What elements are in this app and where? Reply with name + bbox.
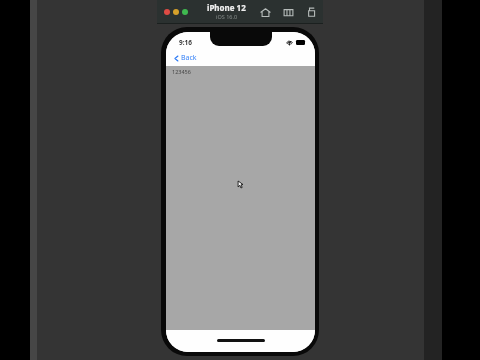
- button[interactable]: [173, 9, 179, 15]
- button[interactable]: App switcher: [281, 5, 295, 19]
- button[interactable]: [182, 9, 188, 15]
- staticText: iOS 16.0: [216, 13, 238, 20]
- staticText: Back: [181, 53, 197, 63]
- staticText: 123456: [172, 68, 191, 75]
- staticText: iPhone 12: [207, 2, 246, 13]
- staticText: 9:16: [179, 38, 192, 47]
- button[interactable]: Rotate: [304, 5, 318, 19]
- button[interactable]: Home: [258, 5, 272, 19]
- button[interactable]: Back: [172, 51, 198, 65]
- button[interactable]: [164, 9, 170, 15]
